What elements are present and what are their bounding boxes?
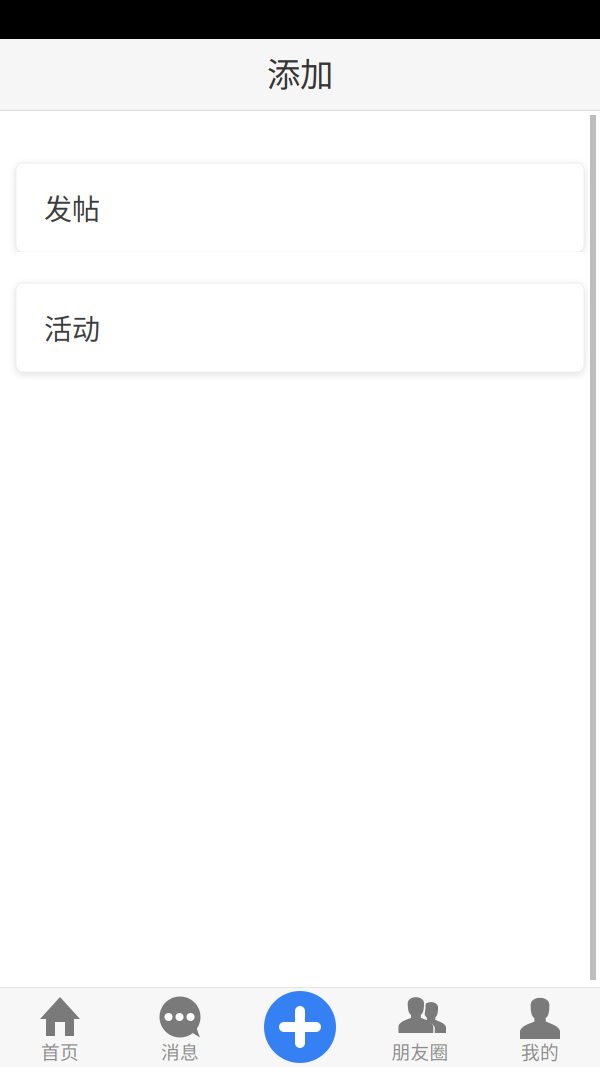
staticText: 首页 (41, 1037, 79, 1064)
staticText: 朋友圈 (391, 1037, 448, 1064)
button[interactable]: 活动 (16, 283, 584, 372)
button[interactable]: 我的 (480, 987, 600, 1067)
button[interactable]: 朋友圈 (360, 987, 480, 1067)
button[interactable]: 添加 (264, 991, 336, 1063)
button[interactable]: 发帖 (16, 163, 584, 252)
staticText (298, 1037, 302, 1064)
button[interactable] (240, 987, 360, 1067)
button[interactable]: 消息 (120, 987, 240, 1067)
staticText: 我的 (521, 1037, 559, 1064)
staticText: 添加 (267, 48, 333, 96)
staticText: 发帖 (44, 187, 100, 228)
staticText: 消息 (161, 1037, 199, 1064)
button[interactable]: 首页 (0, 987, 120, 1067)
staticText: 活动 (44, 307, 100, 348)
